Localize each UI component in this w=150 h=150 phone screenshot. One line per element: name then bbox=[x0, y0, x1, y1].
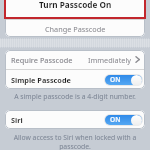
button[interactable]: Simple Passcode bbox=[5, 70, 145, 89]
staticText: A simple passcode is a 4-digit number. bbox=[0, 92, 150, 101]
button[interactable]: Change Passcode bbox=[5, 20, 145, 37]
staticText: Allow access to Siri when locked with a … bbox=[0, 133, 150, 150]
staticText: Turn Passcode On bbox=[39, 0, 112, 10]
button[interactable]: Require Passcode bbox=[5, 50, 145, 69]
staticText: Simple Passcode bbox=[11, 75, 71, 85]
button[interactable]: On bbox=[104, 114, 143, 126]
staticText: ON bbox=[110, 75, 121, 84]
staticText: ON bbox=[110, 115, 121, 124]
staticText: Siri bbox=[11, 115, 23, 125]
button[interactable]: On bbox=[104, 74, 143, 86]
button[interactable]: Siri bbox=[5, 110, 145, 129]
staticText: Immediately bbox=[88, 55, 132, 65]
staticText: Require Passcode bbox=[11, 55, 73, 65]
button[interactable]: Turn Passcode On bbox=[5, 0, 145, 19]
staticText: Change Passcode bbox=[45, 24, 106, 34]
